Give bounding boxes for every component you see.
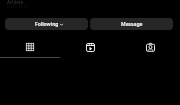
staticText: Daily runs [7, 3, 29, 9]
button[interactable]: Reels [60, 40, 120, 54]
staticText: Athlete [7, 0, 24, 5]
button[interactable]: Posts grid [0, 40, 60, 54]
button[interactable]: Following [5, 18, 88, 30]
staticText: Following [35, 21, 59, 28]
button[interactable]: Message [90, 18, 173, 30]
button[interactable]: Tagged [120, 40, 180, 54]
staticText: Message [121, 21, 143, 28]
